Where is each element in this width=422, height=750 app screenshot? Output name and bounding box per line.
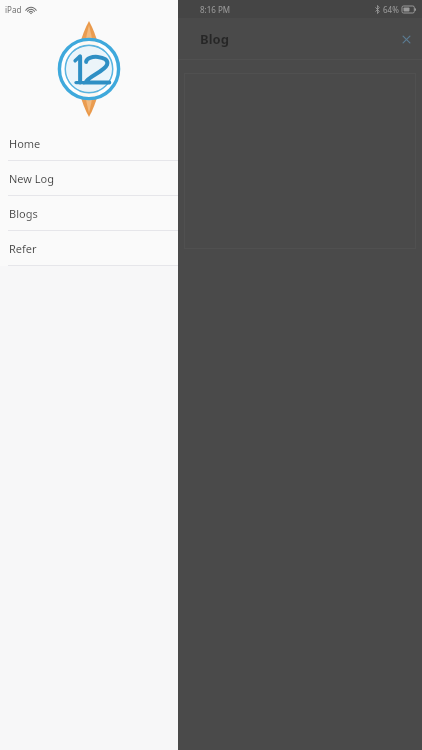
- button[interactable]: Refer: [0, 231, 178, 265]
- staticText: Home: [9, 136, 41, 151]
- button[interactable]: Blogs: [0, 196, 178, 230]
- button[interactable]: Close: [395, 28, 417, 50]
- staticText: iPad: [5, 4, 22, 15]
- staticText: Refer: [9, 241, 37, 256]
- staticText: Blog: [200, 30, 229, 48]
- staticText: New Log: [9, 171, 55, 186]
- staticText: 64%: [383, 4, 399, 15]
- button[interactable]: New Log: [0, 161, 178, 195]
- staticText: Blogs: [9, 206, 38, 221]
- button[interactable]: Home: [0, 126, 178, 160]
- staticText: 8:16 PM: [200, 4, 231, 15]
